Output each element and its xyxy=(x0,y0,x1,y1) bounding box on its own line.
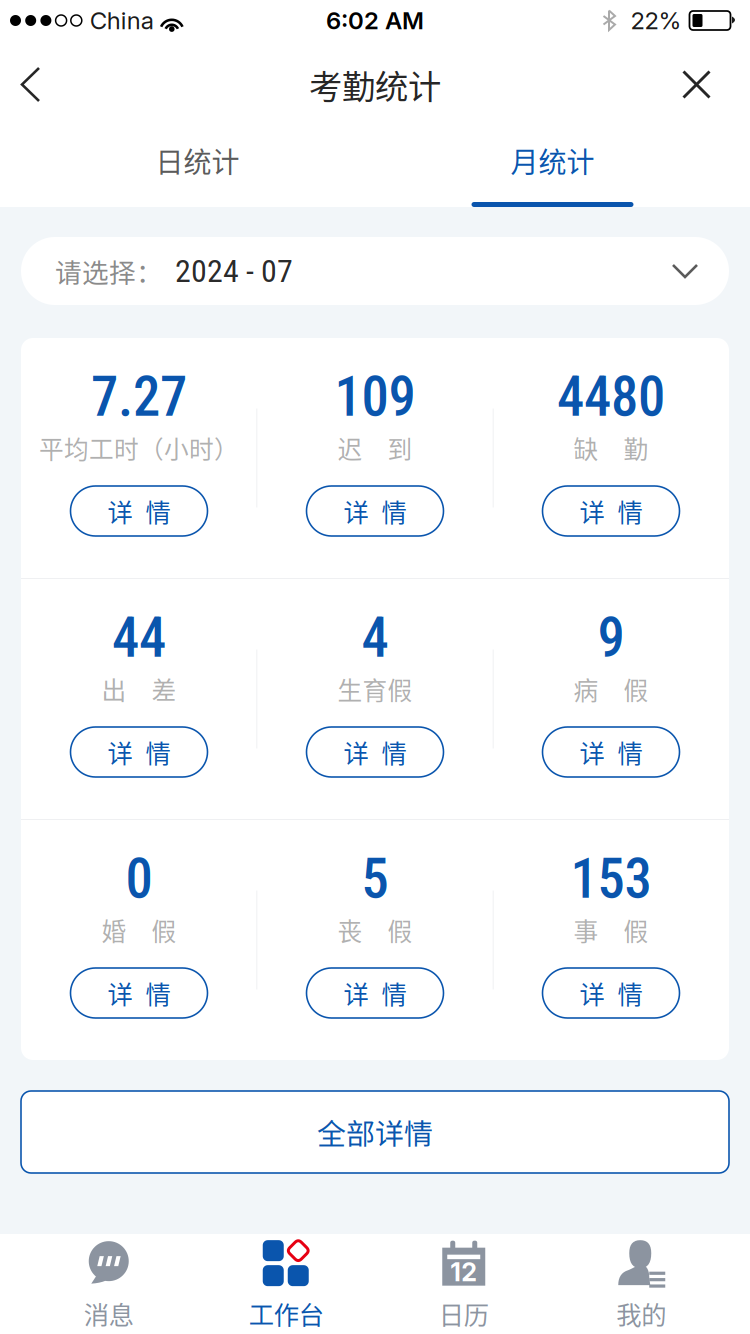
button[interactable]: 详 情 xyxy=(542,727,679,777)
button[interactable]: 详 情 xyxy=(542,968,679,1018)
staticText: 详 情 xyxy=(343,493,406,529)
button[interactable]: 12 xyxy=(375,1234,552,1334)
staticText: 生育假 xyxy=(337,671,412,707)
staticText: 44 xyxy=(112,606,166,670)
staticText: 9 xyxy=(597,606,624,670)
staticText: 月统计 xyxy=(510,140,594,181)
staticText: 丧 假 xyxy=(337,912,412,948)
button[interactable]: 详 情 xyxy=(70,727,207,777)
button[interactable]: 请选择： xyxy=(21,237,729,305)
staticText: 4480 xyxy=(557,365,665,429)
staticText: 2024 - 07 xyxy=(175,252,293,290)
staticText: 日历 xyxy=(439,1295,489,1332)
staticText: 详 情 xyxy=(579,493,642,529)
staticText: 请选择： xyxy=(55,252,163,290)
button[interactable]: 月统计 xyxy=(375,122,730,207)
staticText: 4 xyxy=(361,606,388,670)
staticText: China xyxy=(90,6,154,35)
staticText: 平均工时（小时） xyxy=(39,430,239,466)
staticText: 婚 假 xyxy=(101,912,176,948)
button[interactable]: 详 情 xyxy=(306,968,443,1018)
staticText: 153 xyxy=(570,847,651,911)
staticText: 7.27 xyxy=(91,365,187,429)
staticText: 我的 xyxy=(616,1295,666,1332)
button[interactable]: 消息 xyxy=(20,1234,197,1334)
staticText: 迟 到 xyxy=(337,430,412,466)
staticText: 22% xyxy=(630,6,681,35)
button[interactable]: 我的 xyxy=(552,1234,730,1334)
staticText: 详 情 xyxy=(579,734,642,770)
staticText: 病 假 xyxy=(573,671,648,707)
button[interactable]: 详 情 xyxy=(70,486,207,536)
staticText: 详 情 xyxy=(343,975,406,1011)
staticText: 全部详情 xyxy=(317,1111,433,1153)
staticText: 工作台 xyxy=(249,1295,324,1332)
staticText: 0 xyxy=(125,847,152,911)
staticText: 出 差 xyxy=(101,671,176,707)
staticText: 5 xyxy=(361,847,388,911)
button[interactable]: 工作台 xyxy=(197,1234,375,1334)
staticText: 109 xyxy=(334,365,415,429)
staticText: 考勤统计 xyxy=(309,60,441,109)
button[interactable]: 日统计 xyxy=(20,122,375,207)
staticText: 详 情 xyxy=(579,975,642,1011)
button[interactable]: 详 情 xyxy=(306,727,443,777)
button[interactable]: Close xyxy=(656,50,750,119)
staticText: 详 情 xyxy=(107,734,170,770)
staticText: 详 情 xyxy=(343,734,406,770)
staticText: 6:02 AM xyxy=(326,6,424,35)
staticText: 详 情 xyxy=(107,975,170,1011)
button[interactable]: 详 情 xyxy=(542,486,679,536)
staticText: 详 情 xyxy=(107,493,170,529)
button[interactable]: 详 情 xyxy=(306,486,443,536)
staticText: 日统计 xyxy=(155,140,239,181)
button[interactable]: Back xyxy=(0,49,67,119)
staticText: 消息 xyxy=(84,1295,134,1332)
button[interactable]: 详 情 xyxy=(70,968,207,1018)
button[interactable]: 全部详情 xyxy=(21,1091,729,1173)
staticText: 缺 勤 xyxy=(573,430,648,466)
staticText: 12 xyxy=(450,1257,477,1287)
staticText: 事 假 xyxy=(573,912,648,948)
